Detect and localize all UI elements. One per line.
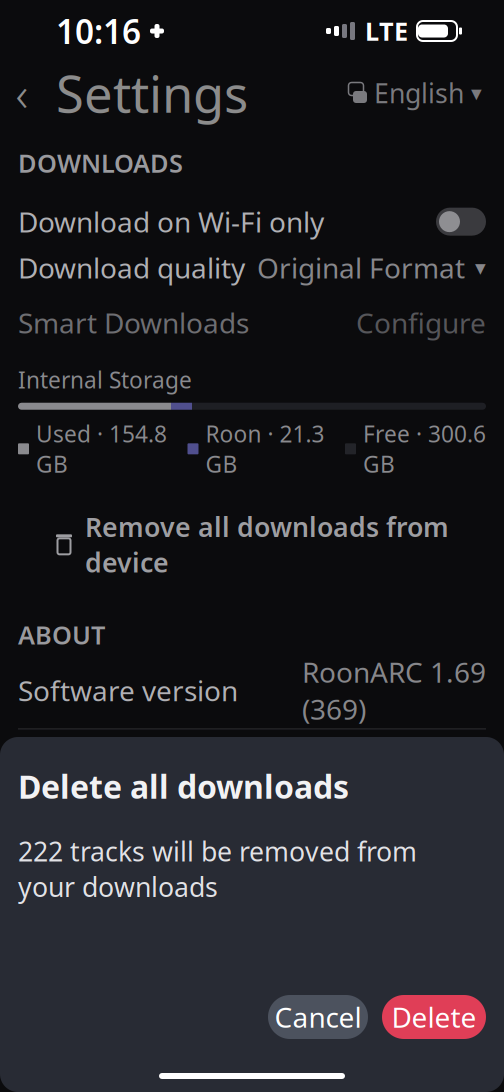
staticText: Free · 300.6 GB: [363, 419, 486, 479]
button[interactable]: Cancel: [268, 995, 368, 1039]
button[interactable]: Privacy policy: [0, 748, 504, 786]
button[interactable]: Remove all downloads from device: [39, 501, 465, 588]
staticText: Smart Downloads: [18, 304, 249, 341]
staticText: Internal Storage: [18, 365, 192, 395]
staticText: ‹: [15, 61, 28, 125]
staticText: 10:16: [56, 9, 141, 53]
staticText: Configure: [356, 304, 486, 341]
button[interactable]: Back: [0, 71, 44, 115]
staticText: Privacy policy: [18, 749, 193, 786]
button[interactable]: Download quality: [0, 248, 504, 288]
staticText: ABOUT: [18, 618, 105, 651]
button[interactable]: Smart Downloads: [0, 303, 504, 343]
staticText: Download on Wi-Fi only: [18, 203, 324, 240]
button[interactable]: Terms and Conditions: [0, 825, 504, 863]
staticText: Cancel: [274, 998, 361, 1036]
staticText: Remove all downloads from device: [85, 509, 449, 580]
button[interactable]: Delete: [382, 995, 486, 1039]
button[interactable]: Copyright information: [0, 902, 504, 940]
staticText: Copyright information: [18, 903, 310, 940]
staticText: Terms and Conditions: [18, 826, 303, 863]
button[interactable]: English: [341, 67, 486, 119]
staticText: Settings: [56, 59, 248, 127]
staticText: Used · 154.8 GB: [36, 419, 167, 479]
staticText: RoonARC 1.69 (369): [302, 653, 486, 728]
staticText: DOWNLOADS: [18, 146, 183, 180]
staticText: Software version: [18, 672, 238, 709]
button[interactable]: Download on Wi-Fi only: [0, 202, 504, 242]
staticText: Delete all downloads: [18, 765, 349, 807]
staticText: Roon · 21.3 GB: [205, 419, 324, 479]
staticText: 222 tracks will be removed from your dow…: [18, 833, 417, 904]
staticText: ▾: [475, 255, 486, 280]
staticText: Delete: [391, 998, 476, 1036]
staticText: Original Format: [257, 249, 465, 286]
staticText: Download quality: [18, 249, 245, 286]
staticText: English: [374, 75, 464, 111]
staticText: LTE: [365, 14, 408, 48]
staticText: ▾: [471, 81, 482, 105]
